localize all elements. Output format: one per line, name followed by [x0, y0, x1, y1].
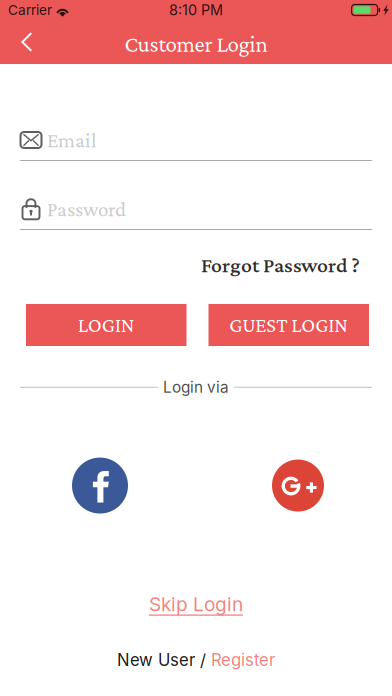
staticText: Forgot Password ?: [201, 253, 360, 277]
staticText: Carrier: [8, 2, 52, 18]
staticText: LOGIN: [78, 313, 135, 336]
button[interactable]: Register: [206, 650, 275, 670]
button[interactable]: Forgot Password ?: [201, 249, 360, 281]
button[interactable]: Back: [0, 20, 54, 64]
staticText: Email: [47, 128, 97, 152]
staticText: Password: [47, 197, 126, 221]
staticText: 8:10 PM: [169, 1, 223, 19]
staticText: Skip Login: [149, 593, 243, 616]
staticText: New User /: [117, 650, 206, 670]
staticText: Register: [206, 650, 275, 670]
button[interactable]: Sign in with Google Plus: [272, 460, 324, 512]
button[interactable]: Sign in with Facebook: [72, 458, 128, 514]
staticText: Customer Login: [124, 31, 267, 57]
button[interactable]: Skip Login: [149, 589, 243, 620]
staticText: GUEST LOGIN: [229, 313, 348, 336]
staticText: Login via: [163, 378, 229, 397]
button[interactable]: GUEST LOGIN: [208, 304, 369, 346]
button[interactable]: LOGIN: [26, 304, 186, 346]
